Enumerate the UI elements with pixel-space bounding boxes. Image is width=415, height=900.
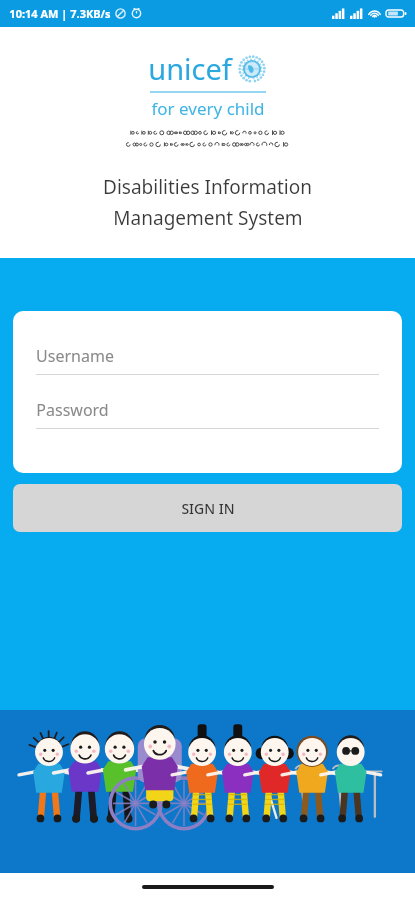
button[interactable]: Password <box>36 399 379 429</box>
staticText: for every child <box>151 97 265 120</box>
staticText: Management System <box>113 205 303 231</box>
staticText: Username <box>36 345 114 367</box>
staticText: 10:14 AM | 7.3KB/s <box>9 6 111 21</box>
staticText: Password <box>36 399 109 421</box>
button[interactable]: SIGN IN <box>13 484 402 532</box>
staticText: Disabilities Information <box>103 174 312 200</box>
button[interactable]: Username <box>36 345 379 375</box>
staticText: unicef <box>148 49 232 88</box>
staticText: SIGN IN <box>181 499 235 518</box>
